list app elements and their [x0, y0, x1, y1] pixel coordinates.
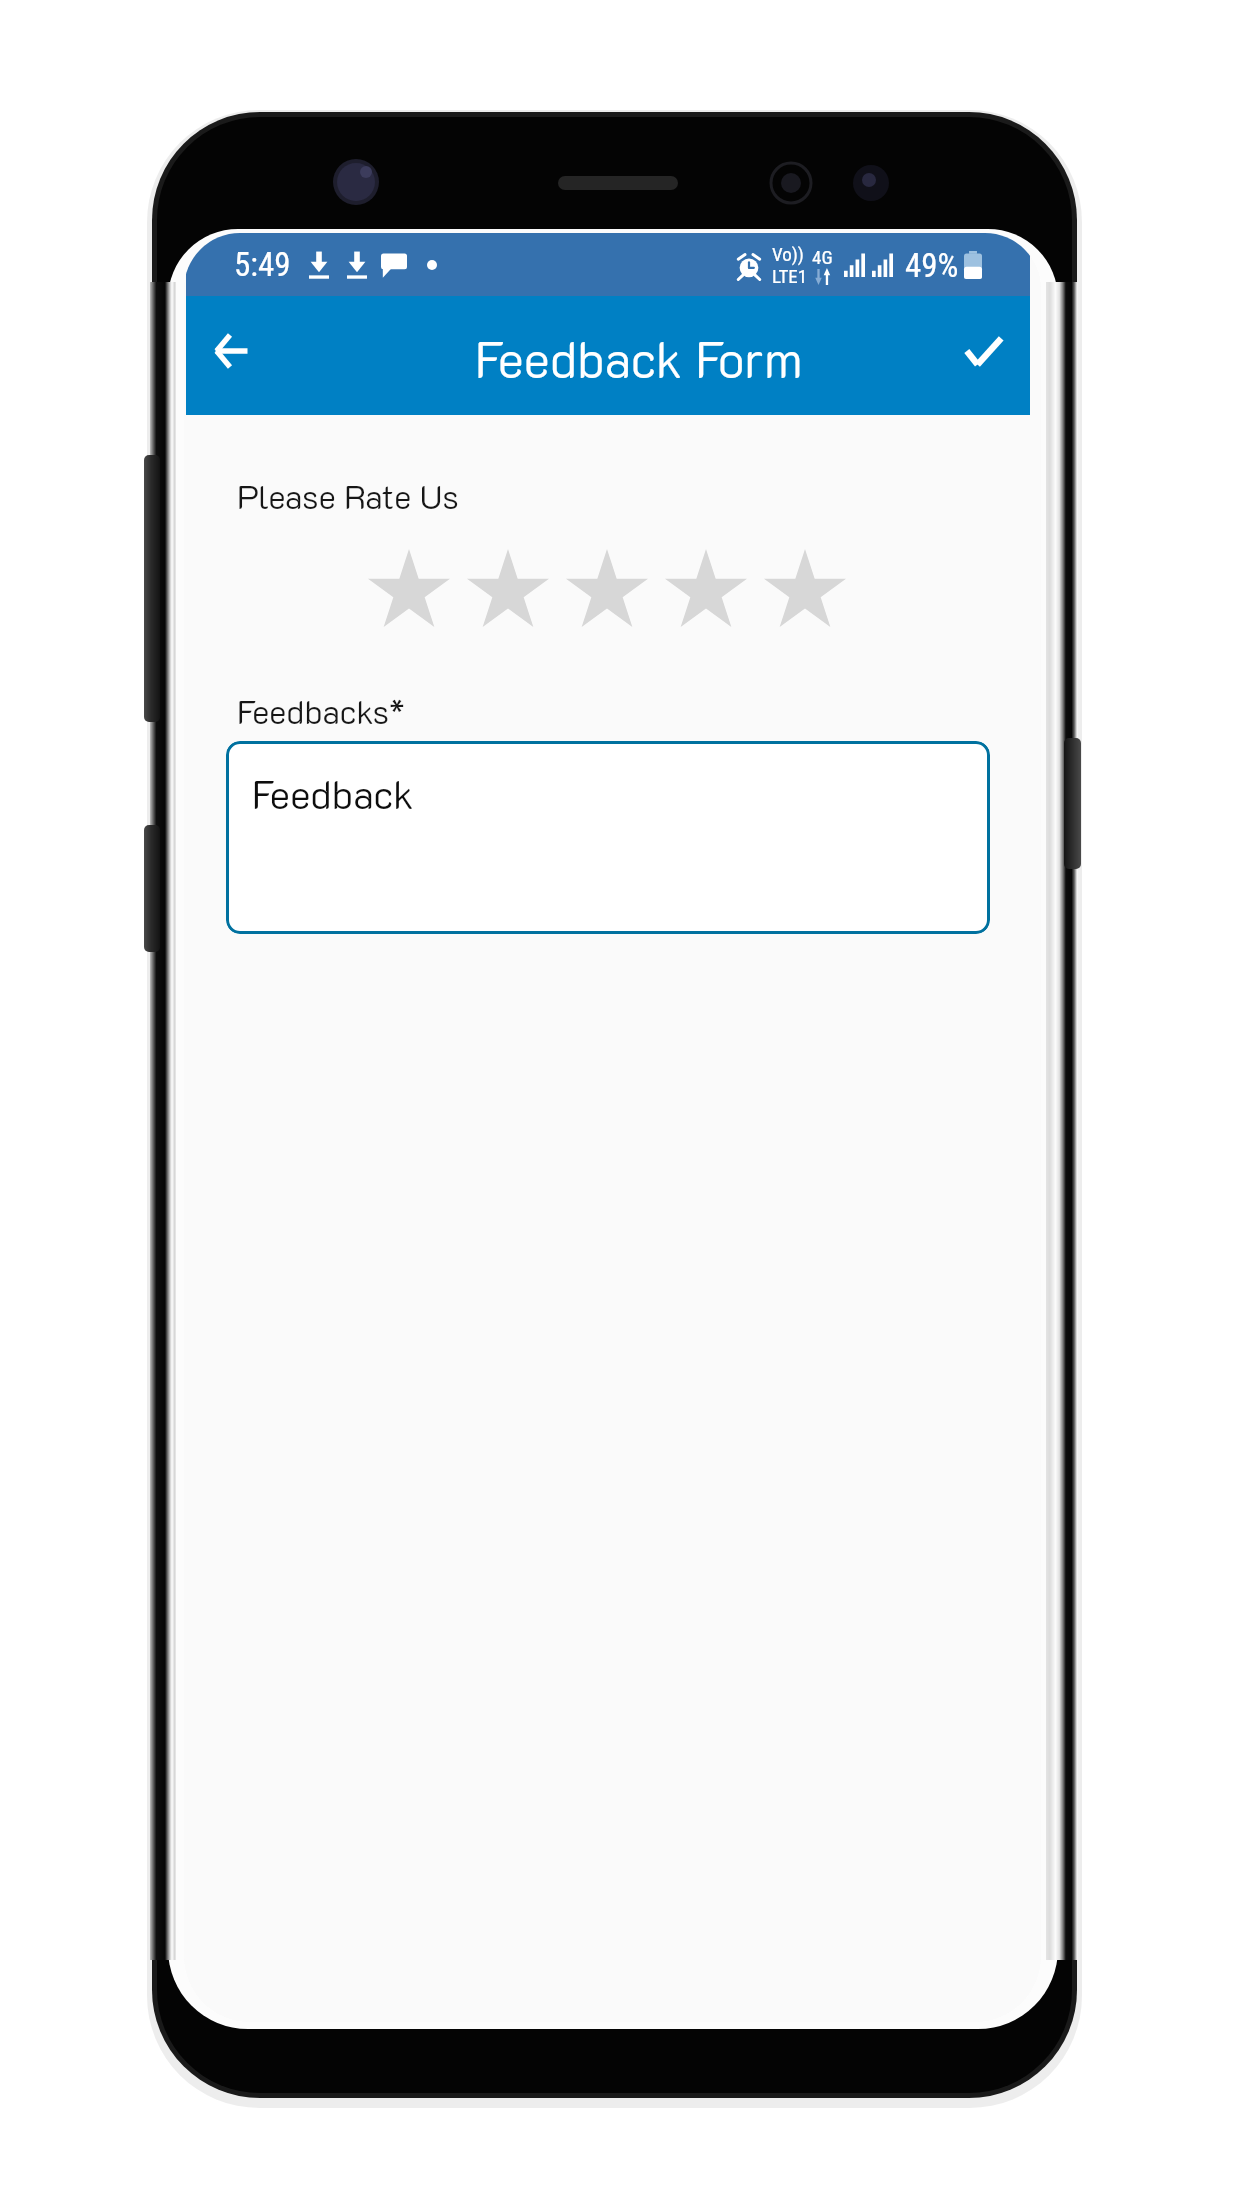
- button[interactable]: Submit: [935, 304, 1033, 398]
- button[interactable]: Feedback: [226, 741, 990, 934]
- staticText: Vo)): [772, 243, 804, 265]
- staticText: 49%: [905, 246, 959, 285]
- staticText: LTE1: [772, 265, 808, 287]
- staticText: Feedbacks*: [237, 689, 405, 732]
- button[interactable]: Rate 2 stars: [467, 549, 566, 627]
- staticText: 4G: [812, 246, 833, 268]
- button[interactable]: Rate 3 stars: [566, 549, 665, 627]
- button[interactable]: Rate 5 stars: [764, 549, 863, 627]
- button[interactable]: Rate 4 stars: [665, 549, 764, 627]
- button[interactable]: Rate 1 stars: [368, 549, 467, 627]
- staticText: Feedback Form: [475, 326, 803, 391]
- button[interactable]: Back: [186, 307, 276, 395]
- staticText: 5:49: [234, 245, 291, 284]
- staticText: Please Rate Us: [237, 474, 459, 517]
- staticText: Feedback: [252, 768, 414, 819]
